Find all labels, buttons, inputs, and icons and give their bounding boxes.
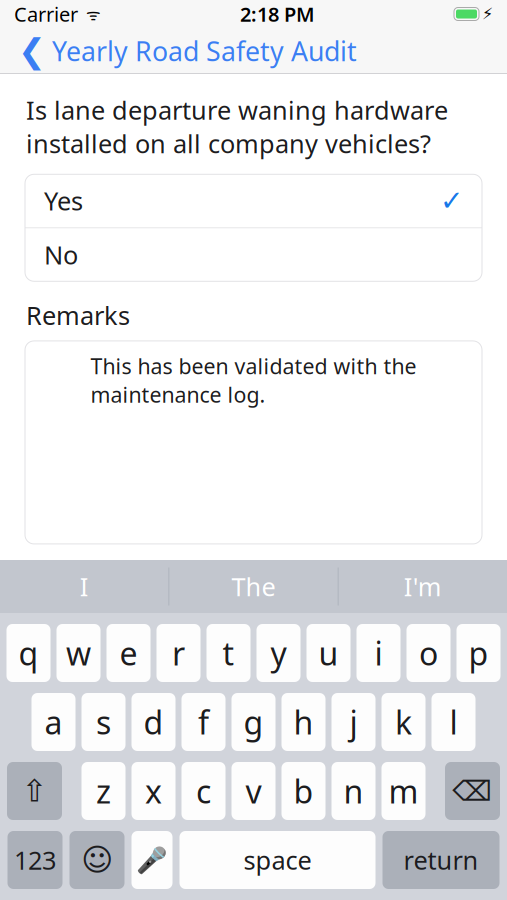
button[interactable]: return	[382, 831, 499, 889]
button[interactable]: n	[331, 762, 375, 820]
button[interactable]: Emoji	[69, 831, 124, 889]
staticText: Remarks	[26, 298, 130, 332]
button[interactable]: o	[406, 624, 450, 682]
button[interactable]: Shift	[7, 762, 62, 820]
button[interactable]: z	[81, 762, 125, 820]
button[interactable]: I	[0, 560, 168, 613]
staticText: b	[293, 770, 313, 812]
button[interactable]: k	[381, 693, 425, 751]
staticText: ⌫	[452, 775, 492, 807]
button[interactable]: g	[231, 693, 275, 751]
staticText: Yearly Road Safety Audit	[52, 33, 357, 69]
button[interactable]: u	[306, 624, 350, 682]
staticText: f	[198, 701, 209, 743]
staticText: i	[374, 632, 382, 674]
staticText: o	[419, 632, 438, 674]
staticText: s	[96, 701, 111, 743]
staticText: n	[343, 770, 363, 812]
button[interactable]: Dictation	[131, 831, 172, 889]
button[interactable]: Numbers	[7, 831, 62, 889]
staticText: w	[66, 632, 91, 674]
button[interactable]: ❮	[0, 23, 367, 79]
button[interactable]: y	[256, 624, 300, 682]
button[interactable]: h	[281, 693, 325, 751]
staticText: u	[318, 632, 338, 674]
staticText: ❮	[18, 32, 46, 70]
staticText: Yes	[44, 184, 83, 218]
staticText: No	[44, 238, 78, 272]
button[interactable]: e	[106, 624, 150, 682]
staticText: z	[96, 770, 111, 812]
staticText: I'm	[404, 570, 442, 603]
staticText: Carrier	[14, 1, 78, 27]
staticText: l	[449, 701, 457, 743]
button[interactable]: p	[456, 624, 500, 682]
button[interactable]: r	[156, 624, 200, 682]
staticText: p	[468, 632, 488, 674]
staticText: I	[80, 570, 89, 603]
staticText: ☺	[81, 843, 113, 877]
staticText: a	[44, 701, 62, 743]
staticText: y	[270, 632, 286, 674]
staticText: k	[395, 701, 412, 743]
staticText: e	[119, 632, 137, 674]
staticText: ⚡︎	[482, 5, 493, 23]
button[interactable]: v	[231, 762, 275, 820]
button[interactable]: space	[179, 831, 375, 889]
staticText: The	[231, 570, 275, 603]
button[interactable]: j	[331, 693, 375, 751]
staticText: ✓	[440, 185, 463, 217]
staticText: Is lane departure waning hardware instal…	[26, 93, 448, 160]
button[interactable]: t	[206, 624, 250, 682]
staticText: m	[388, 770, 418, 812]
staticText: c	[196, 770, 211, 812]
staticText: space	[243, 843, 311, 877]
staticText: x	[145, 770, 162, 812]
staticText: q	[18, 632, 38, 674]
button[interactable]: f	[181, 693, 225, 751]
button[interactable]: I'm	[339, 560, 507, 613]
staticText: j	[349, 701, 357, 743]
button[interactable]: x	[131, 762, 175, 820]
button[interactable]: q	[6, 624, 50, 682]
staticText: This has been validated with the mainten…	[90, 352, 416, 409]
button[interactable]: This has been validated with the mainten…	[25, 341, 482, 544]
staticText: 123	[14, 843, 56, 877]
staticText: r	[172, 632, 185, 674]
button[interactable]: l	[431, 693, 475, 751]
button[interactable]: Yes	[25, 174, 482, 227]
button[interactable]: The	[169, 560, 338, 613]
button[interactable]: s	[81, 693, 125, 751]
staticText: ⇧	[21, 774, 47, 808]
button[interactable]: c	[181, 762, 225, 820]
staticText: t	[222, 632, 234, 674]
button[interactable]: a	[31, 693, 75, 751]
button[interactable]: i	[356, 624, 400, 682]
staticText: g	[243, 701, 263, 743]
button[interactable]: w	[56, 624, 100, 682]
staticText: h	[293, 701, 313, 743]
staticText: 2:18 PM	[240, 1, 315, 27]
button[interactable]: b	[281, 762, 325, 820]
button[interactable]: Delete	[445, 762, 500, 820]
button[interactable]: m	[381, 762, 425, 820]
button[interactable]: No	[25, 228, 482, 281]
staticText: return	[403, 843, 478, 877]
staticText: 🎤	[136, 845, 168, 874]
staticText: d	[143, 701, 163, 743]
button[interactable]: d	[131, 693, 175, 751]
staticText: v	[245, 770, 261, 812]
staticText: ᯤ	[78, 3, 101, 25]
